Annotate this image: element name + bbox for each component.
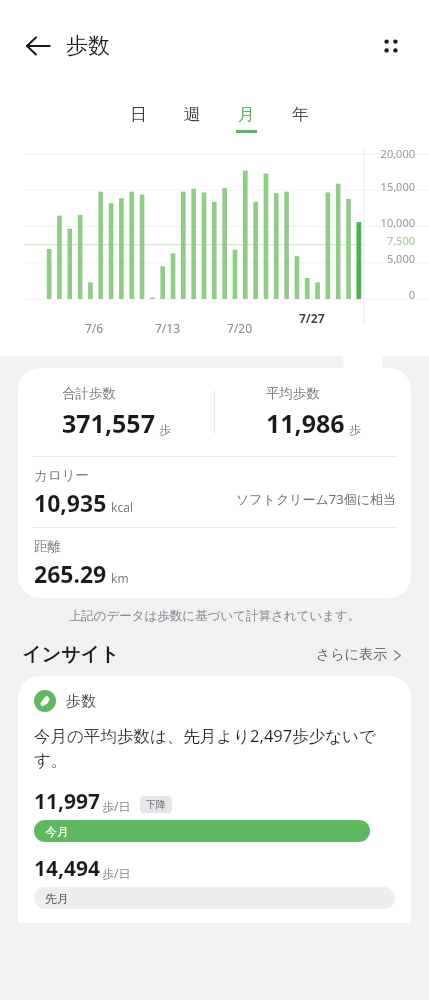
button[interactable]: 合計歩数 bbox=[18, 368, 411, 598]
staticText: 上記のデータは歩数に基づいて計算されています。 bbox=[0, 608, 429, 624]
staticText: kcal bbox=[111, 499, 133, 515]
button[interactable]: さらに表示 bbox=[312, 642, 407, 668]
button[interactable]: Back bbox=[14, 22, 62, 70]
button[interactable]: More options bbox=[367, 22, 415, 70]
staticText: 265.29 bbox=[34, 558, 107, 589]
staticText: 距離 bbox=[34, 538, 61, 555]
staticText: 合計歩数 bbox=[62, 385, 116, 402]
staticText: 週 bbox=[184, 104, 201, 125]
staticText: 11,997 bbox=[34, 787, 101, 816]
staticText: 10,935 bbox=[34, 487, 107, 518]
staticText: 歩 bbox=[159, 422, 171, 437]
staticText: 平均歩数 bbox=[266, 385, 320, 402]
staticText: 歩/日 bbox=[102, 798, 131, 814]
staticText: 10,000 bbox=[380, 215, 415, 230]
staticText: 5,000 bbox=[386, 251, 415, 266]
staticText: インサイト bbox=[22, 643, 120, 667]
staticText: ソフトクリーム73個に相当 bbox=[236, 490, 397, 508]
staticText: 7/27 bbox=[299, 310, 325, 326]
staticText: カロリー bbox=[34, 467, 89, 484]
staticText: 今月 bbox=[45, 824, 69, 839]
staticText: 歩数 bbox=[66, 32, 110, 60]
staticText: 先月 bbox=[45, 891, 69, 906]
staticText: 20,000 bbox=[380, 146, 415, 161]
staticText: 7/13 bbox=[155, 320, 181, 336]
staticText: 歩/日 bbox=[102, 865, 131, 881]
staticText: 0 bbox=[408, 287, 415, 302]
staticText: 年 bbox=[292, 104, 309, 125]
staticText: 月 bbox=[238, 104, 255, 125]
button[interactable]: 年 bbox=[288, 104, 312, 133]
staticText: 14,494 bbox=[34, 854, 101, 883]
button[interactable]: 週 bbox=[180, 104, 204, 133]
staticText: 7,500 bbox=[386, 233, 415, 248]
button[interactable]: 日 bbox=[126, 104, 150, 133]
staticText: km bbox=[111, 570, 129, 586]
staticText: 7/6 bbox=[85, 320, 104, 336]
button[interactable]: 月 bbox=[234, 104, 258, 133]
staticText: 歩 bbox=[349, 422, 361, 437]
button[interactable]: 歩数 bbox=[18, 676, 411, 923]
staticText: 下降 bbox=[146, 798, 166, 811]
staticText: 7/20 bbox=[227, 320, 253, 336]
staticText: 11,986 bbox=[266, 406, 345, 440]
staticText: 15,000 bbox=[380, 179, 415, 194]
staticText: さらに表示 bbox=[316, 646, 387, 664]
staticText: 歩数 bbox=[66, 692, 96, 711]
staticText: 今月の平均歩数は、先月より2,497歩少ないです。 bbox=[34, 724, 395, 771]
staticText: 日 bbox=[130, 104, 147, 125]
staticText: 371,557 bbox=[62, 406, 155, 440]
